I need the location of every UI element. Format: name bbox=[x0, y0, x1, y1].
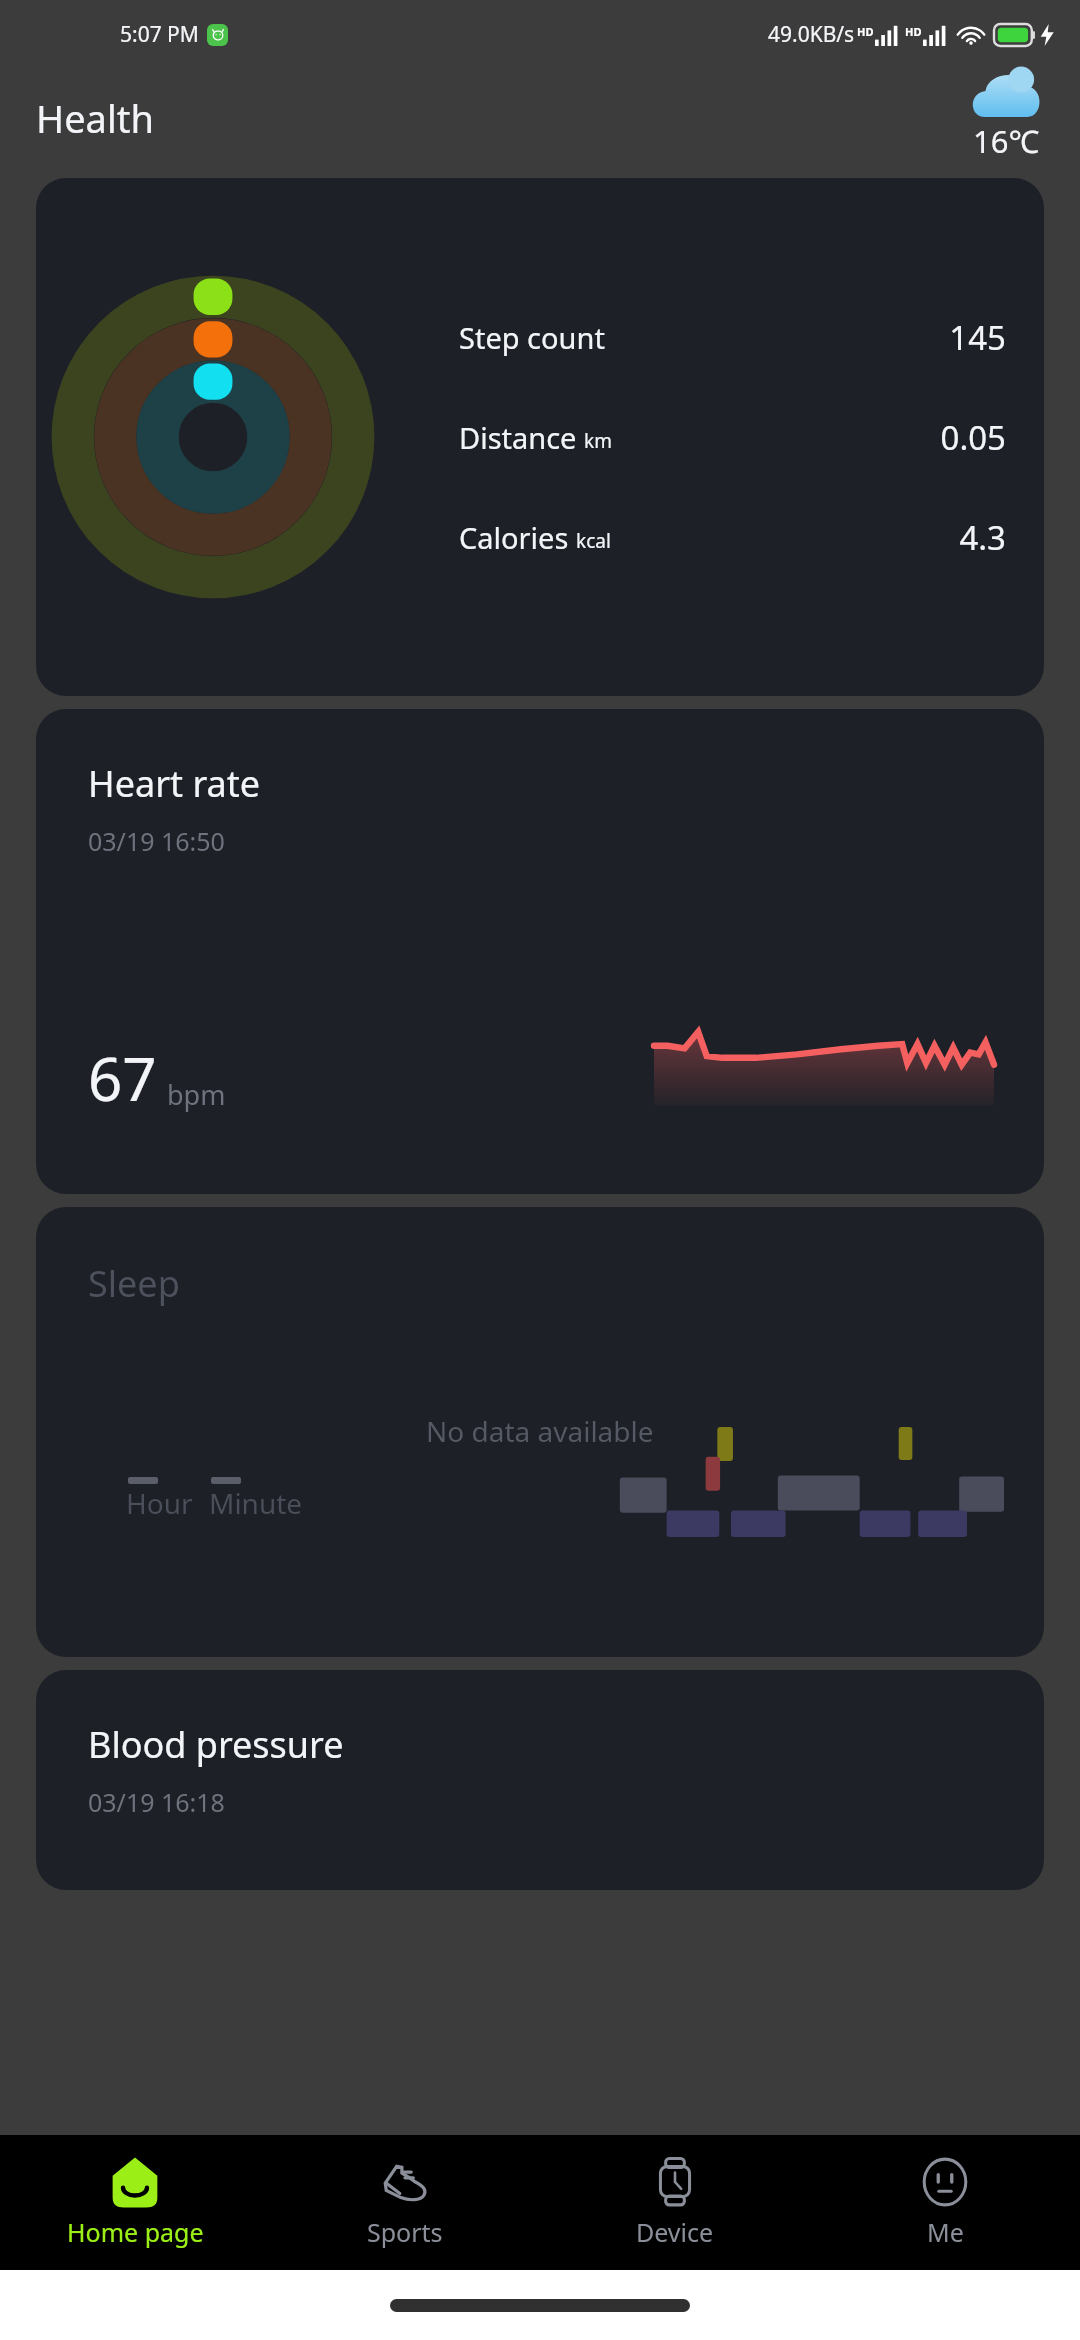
staticText: 03/19 16:50 bbox=[88, 824, 225, 858]
button[interactable]: Sports bbox=[270, 2135, 540, 2270]
staticText: HD bbox=[905, 24, 922, 39]
staticText: Device bbox=[636, 2215, 714, 2249]
staticText: HD bbox=[857, 24, 874, 39]
staticText: Home page bbox=[67, 2215, 204, 2249]
button[interactable]: Heart rate bbox=[36, 709, 1044, 1194]
staticText: Minute bbox=[209, 1484, 303, 1522]
staticText: 67 bbox=[88, 1037, 157, 1119]
staticText: 145 bbox=[949, 315, 1006, 360]
button[interactable]: Blood pressure bbox=[36, 1670, 1044, 1890]
staticText: 5:07 PM bbox=[120, 20, 199, 49]
staticText: 49.0KB/s bbox=[768, 20, 855, 49]
button[interactable]: Step count bbox=[36, 178, 1044, 696]
staticText: 03/19 16:18 bbox=[88, 1785, 225, 1819]
staticText: Distance bbox=[459, 418, 577, 457]
button[interactable]: Me bbox=[810, 2135, 1080, 2270]
button[interactable]: Sleep bbox=[36, 1207, 1044, 1657]
button[interactable]: Device bbox=[540, 2135, 810, 2270]
staticText: Blood pressure bbox=[88, 1720, 344, 1769]
staticText: Sleep bbox=[88, 1259, 180, 1308]
staticText: Step count bbox=[459, 318, 605, 357]
staticText: No data available bbox=[426, 1412, 654, 1450]
staticText: Heart rate bbox=[88, 759, 261, 808]
staticText: km bbox=[584, 428, 612, 454]
button[interactable]: Home page bbox=[0, 2135, 270, 2270]
staticText: Hour bbox=[126, 1484, 193, 1522]
staticText: Calories bbox=[459, 518, 569, 557]
staticText: Me bbox=[927, 2215, 964, 2249]
staticText: 4.3 bbox=[959, 515, 1006, 560]
button[interactable]: Weather bbox=[968, 66, 1044, 162]
staticText: Health bbox=[36, 92, 154, 144]
staticText: Sports bbox=[367, 2215, 443, 2249]
staticText: bpm bbox=[167, 1076, 226, 1113]
staticText: 16℃ bbox=[973, 120, 1040, 162]
staticText: kcal bbox=[576, 528, 611, 554]
staticText: 0.05 bbox=[940, 415, 1006, 460]
